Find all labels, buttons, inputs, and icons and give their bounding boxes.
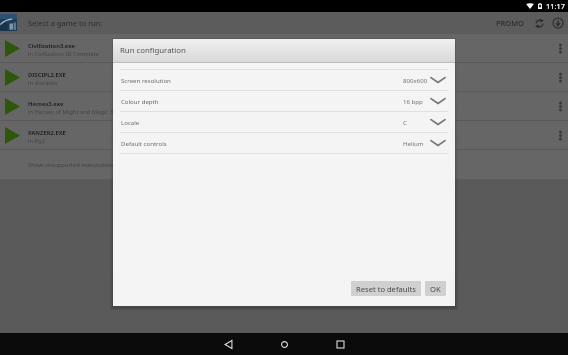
staticText: C — [403, 118, 407, 126]
button[interactable]: PANZER2.EXE — [0, 121, 568, 149]
staticText: DISCIPL2.EXE — [28, 71, 66, 79]
staticText: Heroes3.exe — [28, 100, 64, 108]
staticText: 800x600 — [403, 76, 428, 84]
button[interactable]: Show unsupported executables — [0, 150, 568, 179]
staticText: 11:17 — [546, 1, 565, 11]
staticText: Show unsupported executables — [28, 161, 114, 169]
staticText: in Heroes of Might and Magic 3 — [28, 108, 114, 116]
button[interactable]: Locale — [113, 112, 455, 132]
staticText: OK — [430, 284, 441, 294]
button[interactable]: Heroes3.exe — [0, 92, 568, 120]
button[interactable]: DISCIPL2.EXE — [0, 63, 568, 91]
button[interactable]: Reset to defaults — [351, 281, 421, 296]
button[interactable]: Recents — [312, 333, 368, 355]
button[interactable]: Default controls — [113, 133, 455, 153]
button[interactable]: OK — [425, 281, 446, 296]
staticText: in Civilization III Complete — [28, 50, 100, 58]
button[interactable]: More options — [552, 63, 568, 91]
button[interactable]: PROMO — [493, 14, 527, 32]
button[interactable]: Screen resolution — [113, 70, 455, 90]
staticText: Default controls — [121, 139, 167, 147]
staticText: Locale — [121, 118, 140, 126]
staticText: Civilization3.exe — [28, 42, 75, 50]
staticText: Helium — [403, 139, 424, 147]
button[interactable]: Back — [200, 333, 256, 355]
staticText: in disciples — [28, 79, 58, 87]
staticText: Reset to defaults — [356, 284, 416, 294]
staticText: Run configuration — [120, 45, 186, 56]
button[interactable]: Download — [549, 13, 566, 33]
button[interactable]: More options — [552, 34, 568, 62]
button[interactable]: Civilization3.exe — [0, 34, 568, 62]
button[interactable]: Colour depth — [113, 91, 455, 111]
button[interactable]: More options — [552, 92, 568, 120]
button[interactable]: More options — [552, 121, 568, 149]
button[interactable]: Refresh — [531, 13, 548, 33]
staticText: Colour depth — [121, 97, 159, 105]
staticText: Screen resolution — [121, 76, 171, 84]
staticText: Select a game to run: — [28, 18, 103, 28]
button[interactable]: Home — [256, 333, 312, 355]
staticText: in Pg2 — [28, 137, 45, 145]
staticText: PANZER2.EXE — [28, 129, 66, 137]
staticText: 16 bpp — [403, 97, 423, 105]
